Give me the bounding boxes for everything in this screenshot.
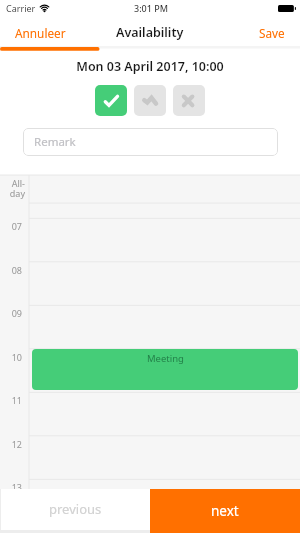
- staticText: Annuleer: [15, 25, 66, 41]
- staticText: 08: [0, 264, 22, 276]
- staticText: Availability: [116, 24, 184, 41]
- staticText: 09: [0, 307, 22, 319]
- staticText: Mon 03 April 2017, 10:00: [0, 58, 300, 75]
- button[interactable]: Save: [247, 20, 300, 46]
- button[interactable]: Maybe: [134, 85, 166, 116]
- staticText: next: [211, 502, 239, 520]
- staticText: All- day: [0, 177, 25, 199]
- button[interactable]: Meeting: [32, 349, 298, 390]
- staticText: 10: [0, 351, 22, 363]
- button[interactable]: next: [150, 489, 300, 533]
- staticText: 07: [0, 220, 22, 232]
- button[interactable]: Annuleer: [0, 20, 78, 46]
- staticText: 3:01 PM: [134, 2, 168, 14]
- staticText: 12: [0, 438, 22, 450]
- button[interactable]: Remark: [23, 128, 278, 156]
- staticText: Carrier: [6, 2, 36, 14]
- staticText: Meeting: [147, 352, 184, 365]
- button[interactable]: Available: [95, 85, 127, 116]
- staticText: Save: [259, 25, 285, 41]
- button[interactable]: previous: [1, 489, 150, 530]
- button[interactable]: Not available: [173, 85, 205, 116]
- staticText: 13: [0, 481, 22, 493]
- staticText: 11: [0, 394, 22, 406]
- staticText: previous: [49, 500, 102, 518]
- staticText: Remark: [34, 134, 76, 150]
